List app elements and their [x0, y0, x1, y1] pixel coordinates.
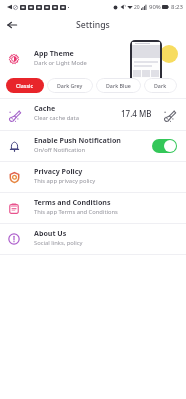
staticText: Dark Grey	[57, 82, 83, 89]
button[interactable]: Push notification toggle	[152, 139, 177, 153]
staticText: 20	[134, 4, 140, 11]
staticText: Clear cache data	[34, 114, 79, 122]
staticText: Cache	[34, 103, 56, 113]
staticText: About Us	[34, 228, 67, 238]
button[interactable]: Cache	[0, 99, 186, 130]
staticText: 90%	[149, 3, 161, 11]
staticText: Terms and Conditions	[34, 197, 111, 207]
staticText: This app Terms and Conditions	[34, 208, 118, 216]
button[interactable]: Clear cache	[161, 107, 177, 123]
staticText: Classic	[16, 82, 34, 89]
button[interactable]: Privacy Policy	[0, 162, 186, 192]
staticText: On/off Notification	[34, 146, 85, 154]
staticText: Enable Push Notification	[34, 135, 121, 145]
staticText: Dark	[154, 82, 167, 89]
staticText: 8:23	[171, 3, 183, 11]
staticText: Social links, policy	[34, 239, 83, 247]
button[interactable]: Dark Blue	[96, 78, 141, 93]
staticText: This app privacy policy	[34, 177, 96, 185]
button[interactable]: Terms and Conditions	[0, 193, 186, 223]
button[interactable]: Dark	[144, 78, 177, 93]
staticText: Dark Blue	[106, 82, 131, 89]
button[interactable]: About Us	[0, 224, 186, 254]
staticText: Settings	[76, 19, 110, 31]
button[interactable]: Dark Grey	[47, 78, 93, 93]
staticText: 17.4 MB	[121, 108, 152, 119]
staticText: App Theme	[34, 48, 74, 58]
button[interactable]: Back	[3, 16, 21, 34]
staticText: Dark or Light Mode	[34, 59, 87, 67]
button[interactable]: Classic	[6, 78, 44, 93]
staticText: Privacy Policy	[34, 166, 83, 176]
button[interactable]: Enable Push Notification	[0, 131, 186, 161]
